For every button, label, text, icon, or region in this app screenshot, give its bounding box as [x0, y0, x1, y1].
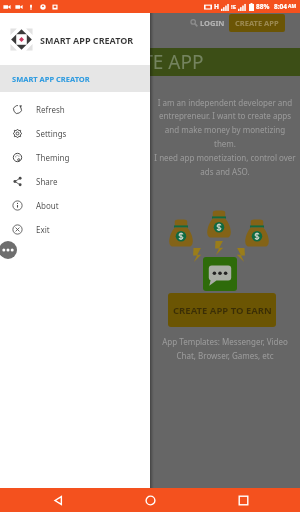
- staticText: Exit: [36, 224, 50, 235]
- staticText: 88%: [256, 2, 270, 11]
- button[interactable]: Refresh: [0, 97, 150, 121]
- staticText: CREATE APP: [235, 18, 279, 28]
- staticText: CREATE APP: [97, 49, 204, 75]
- staticText: Settings: [36, 128, 67, 139]
- staticText: App Templates: Messenger, Video Chat, Br…: [162, 336, 288, 361]
- button[interactable]: About: [0, 193, 150, 217]
- staticText: H: [214, 2, 219, 11]
- staticText: LOGIN: [200, 18, 225, 28]
- staticText: SMART APP CREATOR: [40, 34, 134, 46]
- staticText: !E: [231, 3, 237, 11]
- staticText: CREATE APP TO EARN: [173, 304, 272, 317]
- button[interactable]: Home: [110, 488, 190, 512]
- staticText: Refresh: [36, 104, 65, 115]
- button[interactable]: CREATE APP TO EARN: [168, 293, 276, 327]
- button[interactable]: LOGIN: [190, 18, 225, 28]
- button[interactable]: Theming: [0, 145, 150, 169]
- button[interactable]: Back: [0, 488, 110, 512]
- button[interactable]: Share: [0, 169, 150, 193]
- button[interactable]: Exit: [0, 217, 150, 241]
- staticText: I am an independent developer and entrep…: [154, 97, 296, 177]
- button[interactable]: Settings: [0, 121, 150, 145]
- staticText: Share: [36, 176, 58, 187]
- staticText: 8:04: [274, 2, 287, 11]
- button[interactable]: More options: [0, 241, 17, 259]
- button[interactable]: Recents: [190, 488, 300, 512]
- staticText: AM: [288, 3, 297, 10]
- staticText: SMART APP CREATOR: [12, 74, 90, 84]
- staticText: Theming: [36, 152, 70, 163]
- staticText: About: [36, 200, 59, 211]
- button[interactable]: CREATE APP: [229, 14, 285, 32]
